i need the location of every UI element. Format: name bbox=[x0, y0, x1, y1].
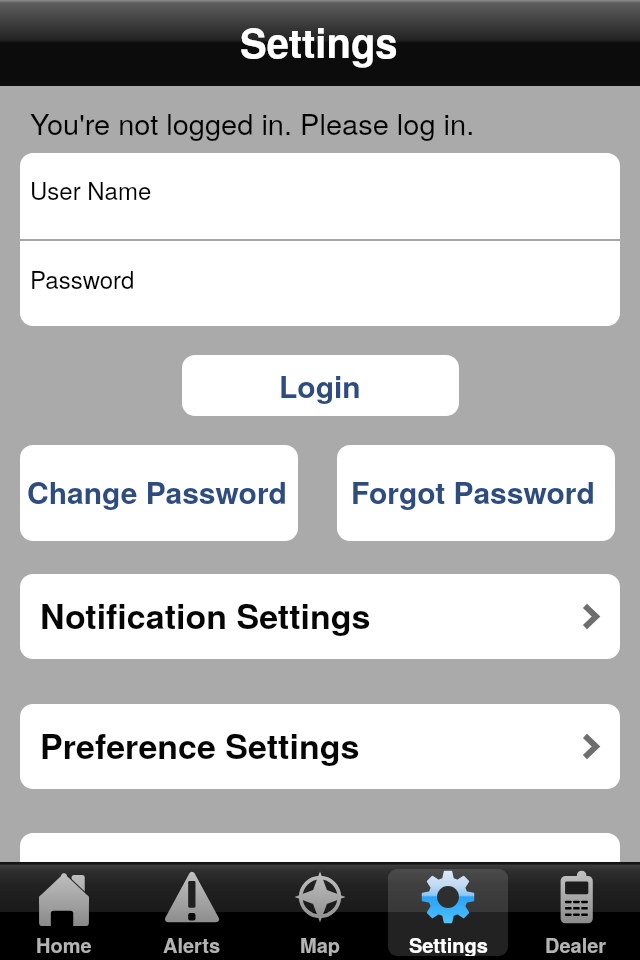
button[interactable]: Alerts bbox=[132, 869, 252, 956]
button[interactable] bbox=[20, 833, 620, 918]
staticText: Notification Settings bbox=[40, 591, 371, 640]
other: Open Preference Settings bbox=[582, 733, 599, 760]
staticText: Login bbox=[279, 364, 361, 407]
button[interactable]: Login bbox=[182, 355, 459, 416]
button[interactable]: Password bbox=[20, 241, 620, 326]
staticText: Forgot Password bbox=[351, 470, 595, 513]
button[interactable]: Settings bbox=[388, 869, 508, 956]
staticText: Settings bbox=[409, 930, 488, 956]
button[interactable]: Notification Settings bbox=[20, 574, 620, 659]
button[interactable]: User Name bbox=[20, 153, 620, 239]
staticText: Home bbox=[36, 930, 92, 956]
button[interactable]: Map bbox=[260, 869, 380, 956]
staticText: Change Password bbox=[27, 470, 287, 513]
button[interactable]: Preference Settings bbox=[20, 704, 620, 789]
staticText: Alerts bbox=[163, 930, 221, 956]
staticText: User Name bbox=[30, 172, 152, 206]
staticText: You're not logged in. Please log in. bbox=[30, 102, 475, 144]
staticText: Map bbox=[300, 930, 340, 956]
button[interactable]: Change Password bbox=[20, 445, 298, 541]
staticText: Preference Settings bbox=[40, 721, 360, 770]
button[interactable]: Dealer bbox=[516, 869, 636, 956]
button[interactable]: Home bbox=[4, 869, 124, 956]
staticText: Password bbox=[30, 261, 135, 295]
staticText: Settings bbox=[240, 13, 398, 70]
staticText: Dealer bbox=[545, 930, 607, 956]
other: Open Notification Settings bbox=[582, 603, 599, 630]
button[interactable]: Forgot Password bbox=[337, 445, 615, 541]
